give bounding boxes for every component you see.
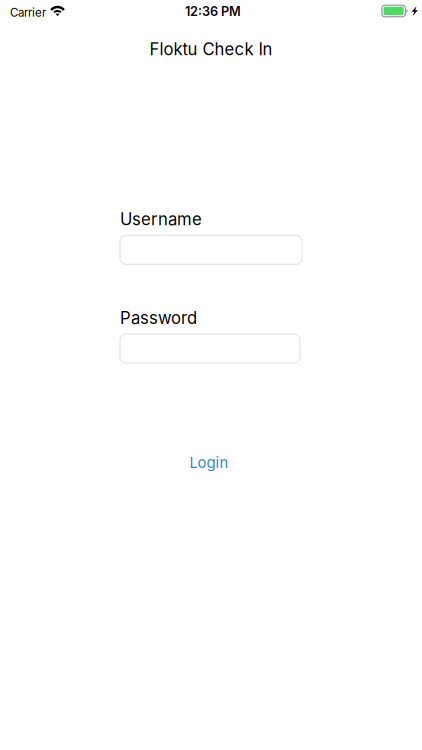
button[interactable]: Username (120, 235, 302, 264)
staticText: Login (189, 453, 228, 472)
staticText: Floktu Check In (149, 39, 272, 59)
button[interactable]: Login (179, 449, 238, 476)
staticText: Password (120, 308, 197, 328)
staticText: Carrier (10, 6, 46, 19)
staticText: Username (120, 209, 202, 229)
staticText: 12:36 PM (185, 4, 241, 19)
button[interactable]: Password (120, 334, 300, 363)
